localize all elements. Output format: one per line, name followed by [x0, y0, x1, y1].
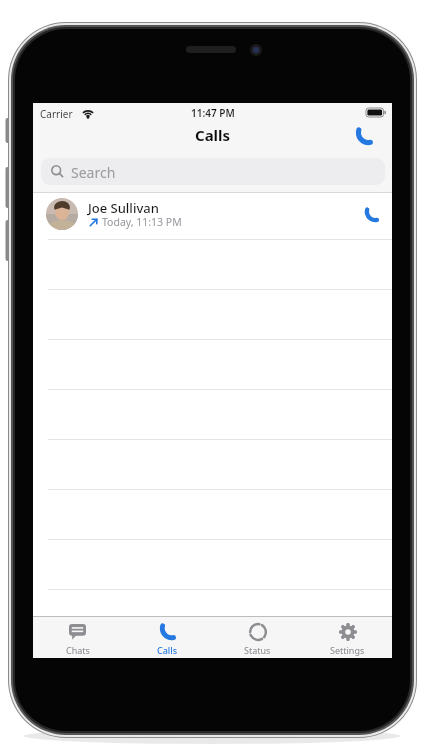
button[interactable]: Joe Sullivan: [33, 193, 392, 239]
button[interactable]: [364, 207, 380, 223]
button[interactable]: Settings: [302, 616, 392, 658]
staticText: Joe Sullivan: [88, 199, 159, 217]
button[interactable]: [355, 127, 374, 146]
staticText: Carrier: [40, 107, 73, 121]
button[interactable]: Calls: [122, 616, 212, 658]
staticText: Search: [71, 163, 116, 182]
staticText: Calls: [195, 125, 231, 145]
staticText: Calls: [157, 644, 178, 656]
button[interactable]: Search: [41, 158, 385, 185]
button[interactable]: Status: [212, 616, 302, 658]
staticText: Status: [244, 644, 271, 656]
button[interactable]: Chats: [33, 616, 122, 658]
staticText: 11:47 PM: [191, 106, 235, 120]
staticText: Chats: [66, 644, 90, 656]
staticText: Settings: [330, 644, 365, 656]
staticText: Today, 11:13 PM: [102, 215, 182, 229]
